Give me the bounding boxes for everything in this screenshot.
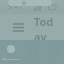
staticText: 9:41: [8, 2, 22, 12]
button[interactable]: Add entry: [8, 0, 52, 6]
staticText: Today: [34, 14, 56, 40]
staticText: Home: [2, 56, 20, 60]
button[interactable]: Menu: [8, 17, 28, 37]
button[interactable]: Home: [0, 40, 22, 64]
